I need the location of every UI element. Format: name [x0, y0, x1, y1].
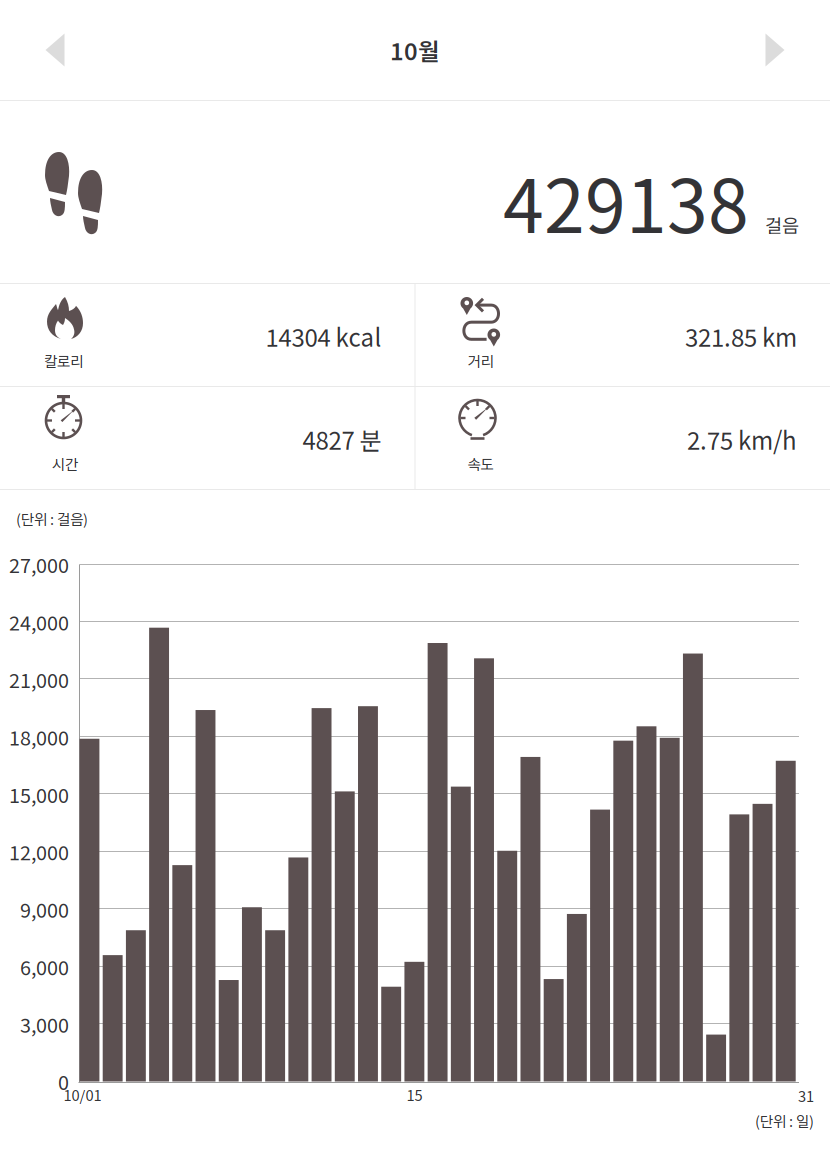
staticText: (단위 : 일) — [755, 1110, 814, 1131]
staticText: 2.75 km/h — [687, 422, 797, 457]
staticText: 18,000 — [9, 722, 69, 751]
staticText: 시간 — [52, 453, 78, 474]
staticText: 24,000 — [9, 608, 69, 636]
staticText: 3,000 — [20, 1010, 69, 1038]
staticText: 12,000 — [9, 837, 69, 866]
staticText: 321.85 km — [685, 319, 797, 354]
staticText: 칼로리 — [44, 350, 83, 371]
staticText: 6,000 — [20, 952, 69, 981]
button[interactable]: 429138 — [0, 101, 830, 283]
staticText: 4827 분 — [302, 422, 381, 457]
staticText: 10월 — [390, 33, 440, 67]
staticText: 10/01 — [63, 1084, 101, 1105]
staticText: 14304 kcal — [265, 319, 381, 354]
staticText: 21,000 — [9, 665, 69, 694]
button[interactable]: 칼로리 — [0, 284, 414, 386]
staticText: 15,000 — [9, 780, 69, 809]
button[interactable]: 속도 — [415, 387, 830, 489]
staticText: 속도 — [467, 453, 493, 474]
button[interactable]: Next month — [720, 0, 830, 100]
button[interactable]: Previous month — [0, 0, 110, 100]
staticText: 0 — [58, 1067, 69, 1096]
button[interactable]: 거리 — [415, 284, 830, 386]
staticText: 걸음 — [765, 211, 799, 238]
staticText: (단위 : 걸음) — [16, 508, 88, 529]
staticText: 9,000 — [20, 895, 69, 923]
staticText: 429138 — [503, 148, 749, 254]
staticText: 27,000 — [9, 550, 69, 579]
staticText: 거리 — [467, 350, 493, 371]
staticText: 31 — [798, 1085, 814, 1106]
button[interactable]: 시간 — [0, 387, 414, 489]
staticText: 15 — [406, 1084, 422, 1105]
